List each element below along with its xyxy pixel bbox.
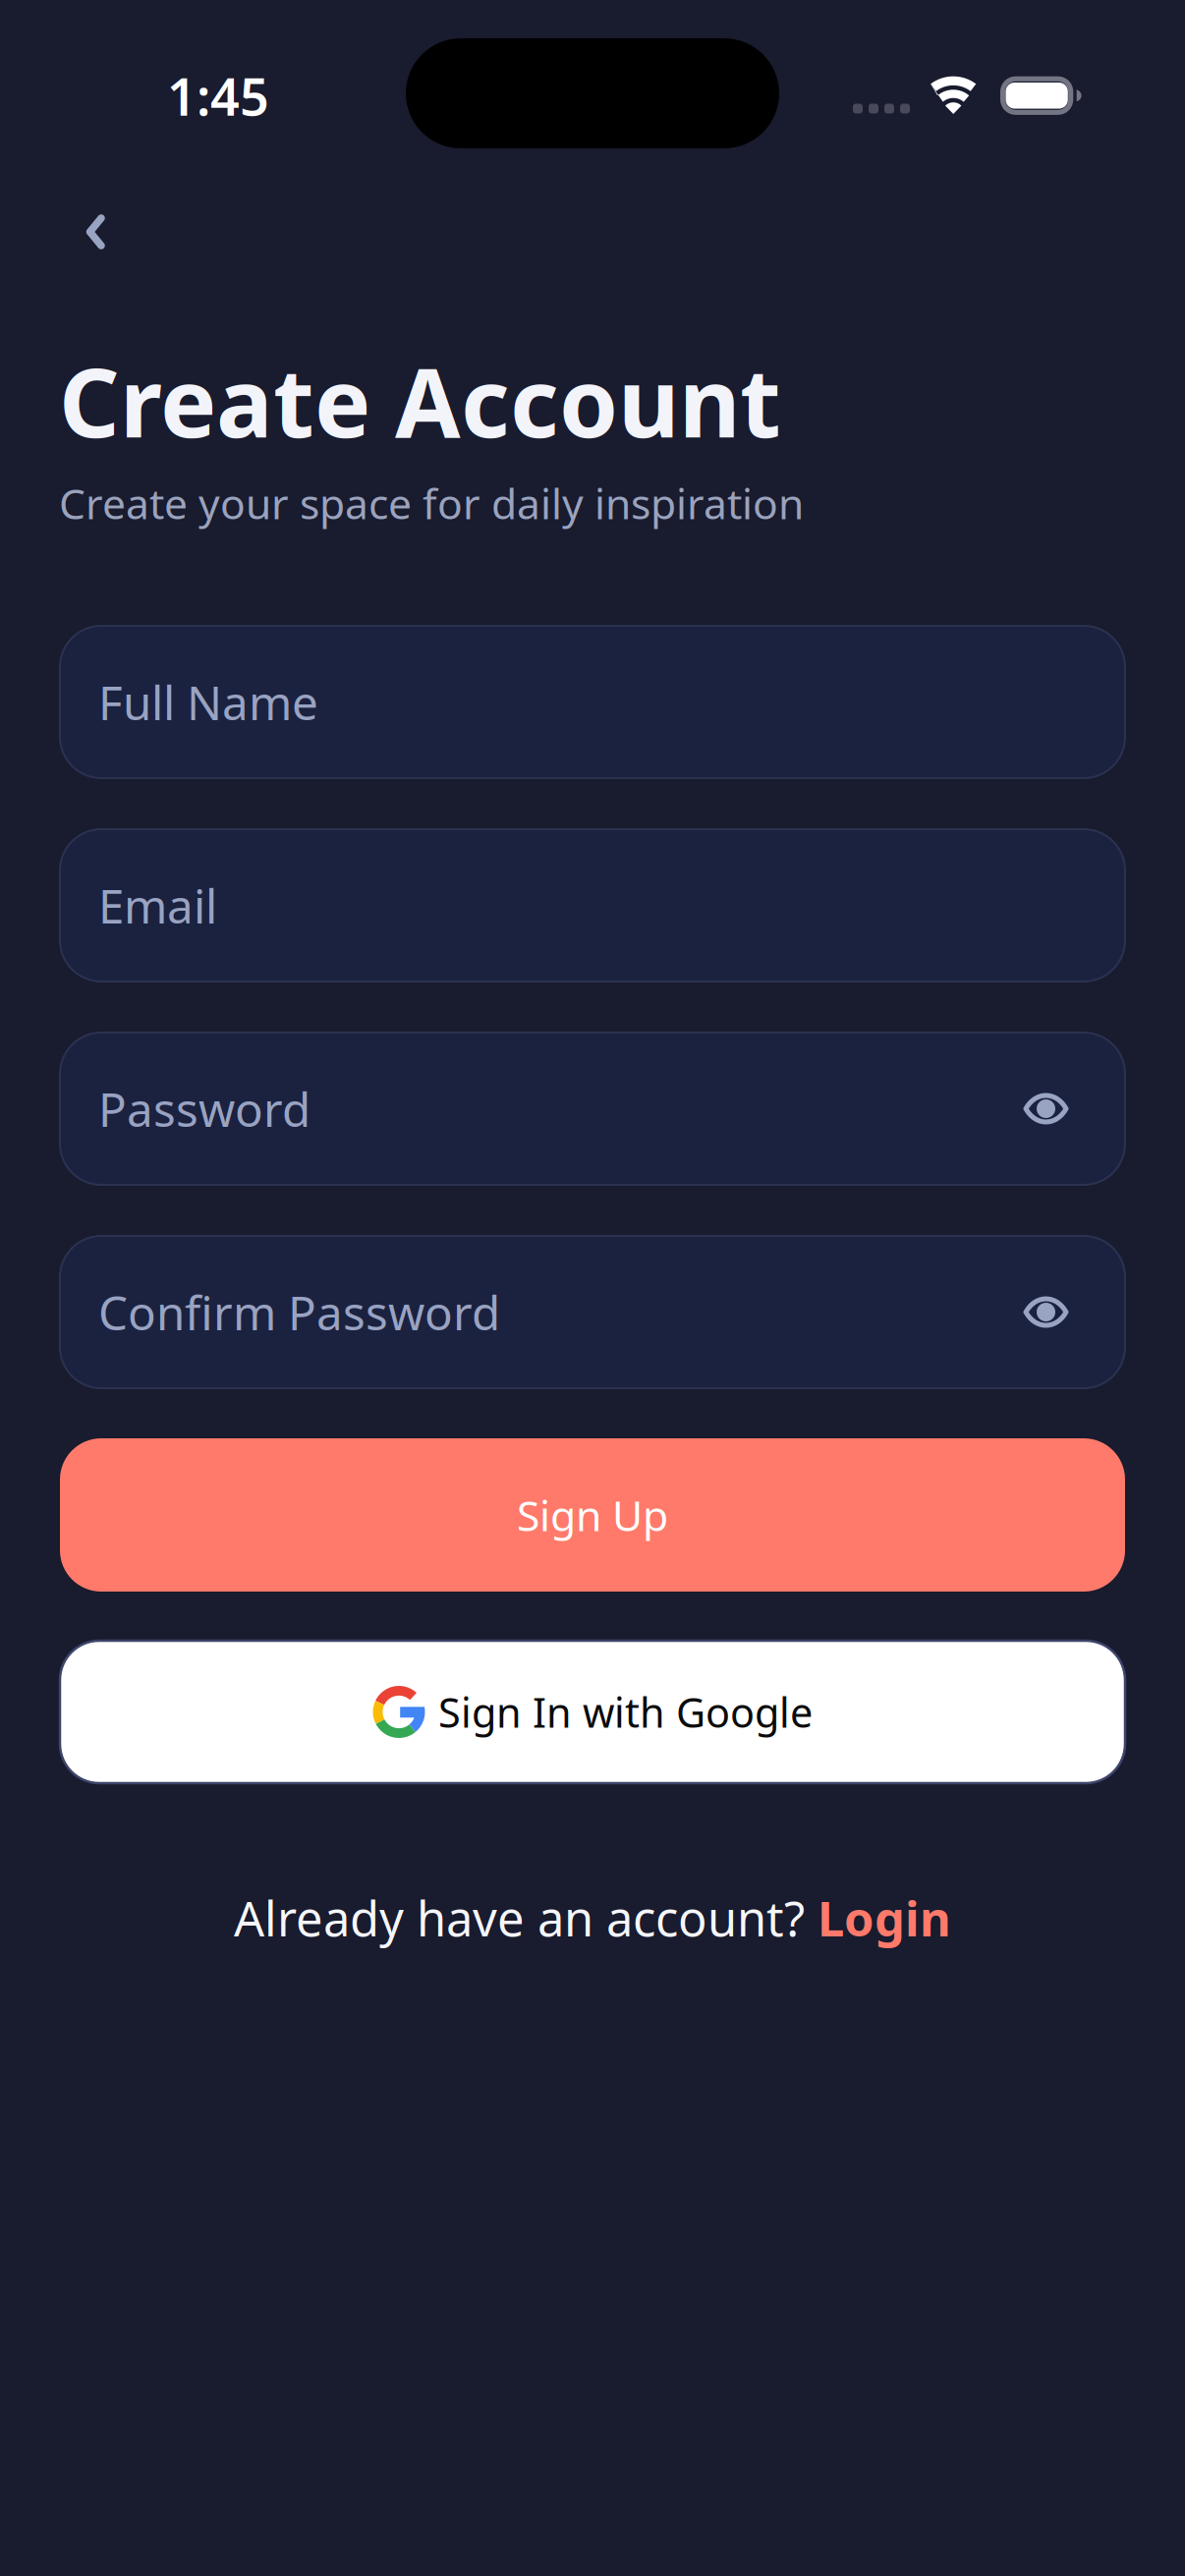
staticText: Create your space for daily inspiration — [59, 474, 804, 531]
button[interactable]: Back — [46, 185, 141, 279]
button[interactable]: Sign In with Google — [60, 1641, 1125, 1783]
button[interactable]: Password — [60, 1033, 1125, 1185]
button[interactable]: Sign Up — [60, 1438, 1125, 1592]
staticText: Password — [98, 1077, 310, 1140]
staticText: Create Account — [59, 336, 781, 465]
staticText: 1:45 — [167, 61, 269, 131]
staticText: Email — [98, 874, 217, 937]
staticText: Sign Up — [517, 1486, 668, 1543]
staticText: Login — [818, 1885, 951, 1950]
staticText: Already have an account? — [234, 1885, 818, 1950]
button[interactable]: Already have an account? — [0, 1883, 1185, 1952]
button[interactable]: Full Name — [60, 626, 1125, 778]
staticText: Confirm Password — [98, 1280, 500, 1344]
staticText: Sign In with Google — [438, 1684, 813, 1740]
button[interactable]: Email — [60, 829, 1125, 981]
button[interactable]: Confirm Password — [60, 1236, 1125, 1388]
staticText: Full Name — [98, 670, 318, 734]
